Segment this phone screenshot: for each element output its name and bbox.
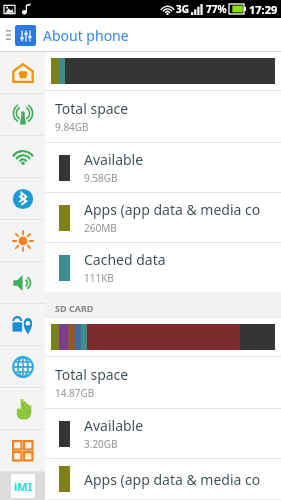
staticText: 9.84GB [55,120,89,134]
staticText: 77% [206,2,227,16]
button[interactable]: sound [0,262,45,303]
button[interactable]: bt [0,178,45,219]
staticText: Apps (app data & media co [84,200,261,219]
staticText: About phone [43,26,129,45]
button[interactable]: wifi [0,136,45,177]
staticText: iMI [14,479,32,494]
button[interactable]: Available [45,409,281,458]
button[interactable]: Cached data [45,243,281,292]
staticText: Total space [55,365,129,384]
button[interactable]: hand [0,388,45,429]
staticText: 3G [176,2,189,16]
staticText: 3.20GB [84,437,118,451]
button[interactable]: Apps (app data & media co [45,193,281,242]
staticText: 9.58GB [84,171,118,185]
button[interactable]: globe [0,346,45,387]
button[interactable]: cell [0,94,45,135]
button[interactable]: bright [0,220,45,261]
staticText: 14.87GB [55,386,95,400]
button[interactable]: Settings [15,25,36,46]
button[interactable]: Available [45,143,281,192]
button[interactable]: apps [0,430,45,471]
staticText: Available [84,150,144,169]
staticText: Apps (app data & media co [84,470,261,489]
button[interactable]: Navigation drawer [4,25,12,45]
staticText: 111KB [84,271,114,285]
button[interactable]: Total space [45,357,281,408]
staticText: Total space [55,99,129,118]
button[interactable]: imi [0,472,45,500]
staticText: Available [84,416,144,435]
staticText: Cached data [84,250,166,269]
staticText: SD CARD [55,302,94,314]
staticText: 17:29 [249,2,278,17]
button[interactable]: loc [0,304,45,345]
button[interactable]: home [0,52,45,93]
button[interactable]: Total space [45,91,281,142]
staticText: 260MB [84,221,117,235]
button[interactable]: Apps (app data & media co [45,459,281,499]
